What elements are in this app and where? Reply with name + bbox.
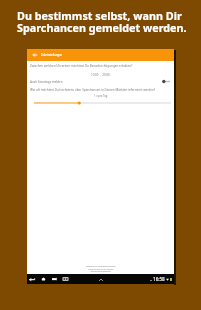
staticText: – [150, 277, 152, 282]
staticText: Zeiteinstellungen [41, 53, 63, 57]
button[interactable]: Back [27, 49, 174, 61]
staticText: Hinweise zur Verarbeitung Deiner Daten f… [86, 265, 116, 272]
other: Back [33, 53, 37, 57]
button[interactable]: Häufigkeit [32, 100, 171, 106]
staticText: Zwischen welchen Uhrzeiten möchtest Du B… [30, 64, 133, 68]
button[interactable]: Home [40, 276, 46, 282]
button[interactable]: 10:00 - 20:00 [27, 72, 174, 77]
staticText: Auch Sonntags melden [30, 80, 63, 84]
staticText: Wie oft möchtest Du höchstens über Sparc… [30, 88, 156, 92]
button[interactable]: Notifications [98, 277, 103, 282]
button[interactable]: Auch am Sonntag benachrichtigen [160, 79, 170, 84]
staticText: 16:58 [153, 276, 165, 282]
button[interactable]: Back [29, 276, 35, 282]
staticText: 1 x pro Tag [94, 94, 108, 98]
staticText: Du bestimmst selbst, wann Dir Sparchance… [17, 8, 187, 35]
staticText: 10:00 - 20:00 [91, 73, 110, 77]
button[interactable]: Screenshot [62, 276, 68, 282]
button[interactable]: Recents [51, 276, 57, 282]
